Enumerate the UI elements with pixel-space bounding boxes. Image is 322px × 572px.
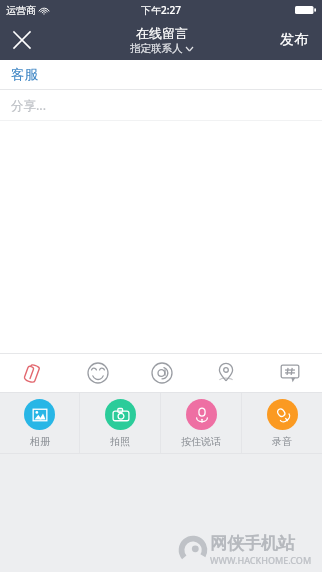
staticText: 分享... [11, 97, 47, 114]
staticText: 网侠手机站 [210, 533, 295, 554]
staticText: 录音 [272, 435, 292, 448]
staticText: 按住说话 [181, 435, 221, 448]
button[interactable]: 相册 [0, 393, 79, 453]
button[interactable]: 客服 [0, 60, 322, 89]
button[interactable]: 按住说话 [161, 393, 241, 453]
staticText: 客服 [11, 66, 38, 83]
button[interactable]: Attach [0, 354, 65, 392]
button[interactable]: 分享... [0, 90, 322, 120]
staticText: 拍照 [110, 435, 130, 448]
staticText: WWW.HACKHOME.COM [210, 554, 312, 566]
staticText: 指定联系人 [130, 42, 183, 55]
button[interactable]: Location [194, 354, 258, 392]
staticText: 发布 [280, 31, 308, 49]
button[interactable]: 录音 [242, 393, 322, 453]
staticText: 运营商 [6, 4, 36, 17]
button[interactable]: 发布 [266, 20, 322, 60]
staticText: 下午2:27 [141, 3, 181, 17]
button[interactable]: 拍照 [80, 393, 160, 453]
staticText: 相册 [30, 435, 50, 448]
button[interactable]: 在线留言 [130, 25, 193, 55]
button[interactable]: Mention [130, 354, 194, 392]
button[interactable]: Topic [258, 354, 322, 392]
button[interactable]: Close [0, 20, 44, 60]
button[interactable]: Emoji [65, 354, 130, 392]
staticText: 在线留言 [136, 25, 188, 41]
